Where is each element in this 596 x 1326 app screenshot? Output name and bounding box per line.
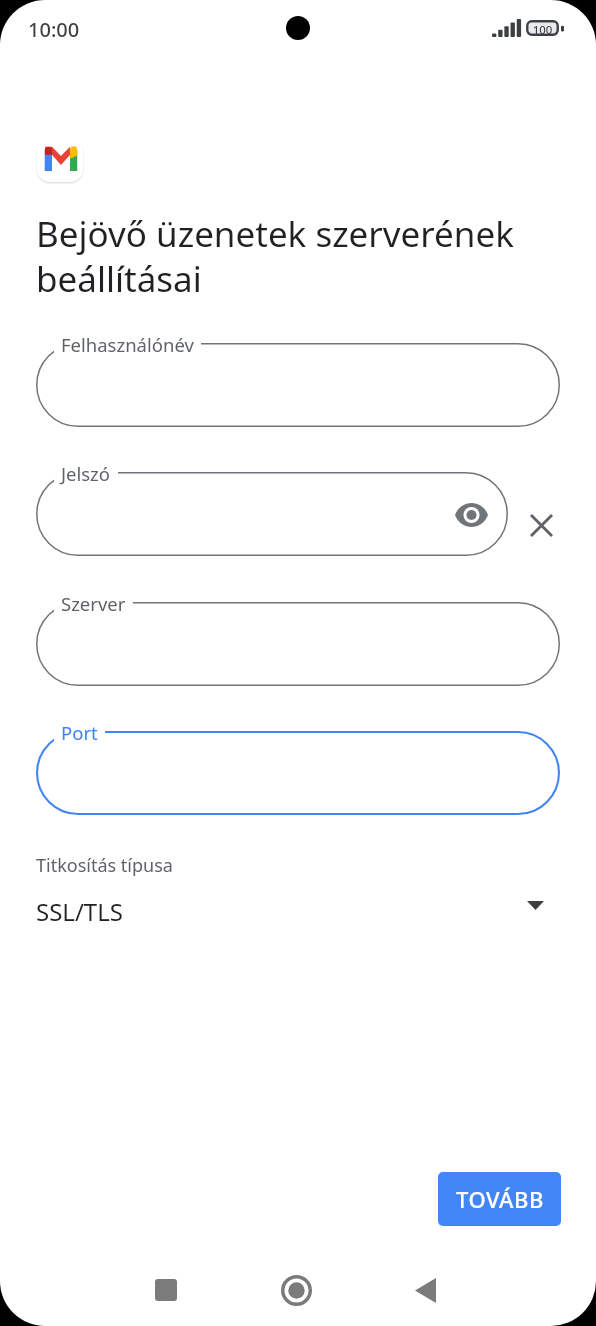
button[interactable]: TOVÁBB: [438, 1172, 561, 1226]
staticText: Titkosítás típusa: [36, 853, 173, 878]
button[interactable]: Clear password: [516, 500, 566, 550]
button[interactable]: Titkosítás típusa: [0, 845, 596, 940]
button[interactable]: Jelszó: [36, 472, 508, 556]
button[interactable]: Szerver: [36, 602, 560, 686]
staticText: SSL/TLS: [36, 895, 123, 928]
button[interactable]: Back: [389, 1254, 461, 1326]
staticText: 10:00: [28, 16, 80, 43]
staticText: Felhasználónév: [61, 332, 194, 357]
staticText: Jelszó: [61, 461, 111, 486]
button[interactable]: Felhasználónév: [36, 343, 560, 427]
staticText: 100: [526, 22, 559, 38]
staticText: Port: [61, 720, 98, 745]
staticText: TOVÁBB: [456, 1184, 544, 1214]
button[interactable]: Port: [36, 731, 560, 815]
button[interactable]: Show password: [446, 490, 496, 540]
staticText: Szerver: [61, 591, 126, 616]
button[interactable]: Recents: [130, 1254, 202, 1326]
button[interactable]: Home: [260, 1254, 332, 1326]
staticText: Bejövő üzenetek szerverének beállításai: [36, 210, 542, 303]
